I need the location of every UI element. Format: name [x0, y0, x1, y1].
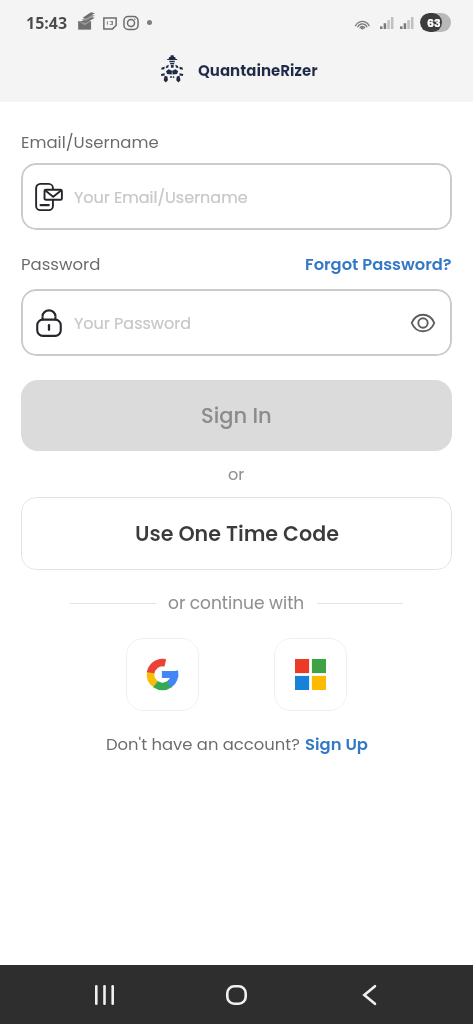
staticText: Password: [21, 253, 101, 276]
button[interactable]: Use One Time Code: [21, 497, 452, 570]
staticText: Your Password: [74, 312, 408, 334]
button[interactable]: Show password: [408, 308, 438, 338]
button[interactable]: Sign in with Google: [126, 638, 199, 711]
button[interactable]: Back: [315, 965, 473, 1024]
button[interactable]: Home: [157, 965, 315, 1024]
staticText: or: [228, 463, 245, 485]
staticText: 63: [427, 15, 441, 30]
button[interactable]: Your Email/Username: [21, 163, 452, 230]
staticText: QuantaineRizer: [198, 60, 318, 81]
button[interactable]: Recents: [0, 965, 157, 1024]
button[interactable]: Sign In: [21, 380, 452, 451]
staticText: 15:43: [26, 12, 68, 34]
staticText: Use One Time Code: [135, 519, 339, 548]
button[interactable]: Sign in with Microsoft: [274, 638, 347, 711]
button[interactable]: Sign Up: [305, 733, 368, 756]
staticText: Sign In: [201, 401, 272, 430]
staticText: Sign Up: [305, 733, 368, 756]
button[interactable]: Forgot Password?: [305, 253, 452, 276]
staticText: or continue with: [168, 591, 305, 615]
button[interactable]: Your Password: [21, 289, 452, 356]
staticText: Don't have an account?: [106, 733, 305, 756]
staticText: Your Email/Username: [74, 186, 248, 208]
staticText: Email/Username: [21, 131, 159, 154]
staticText: Forgot Password?: [305, 253, 452, 276]
